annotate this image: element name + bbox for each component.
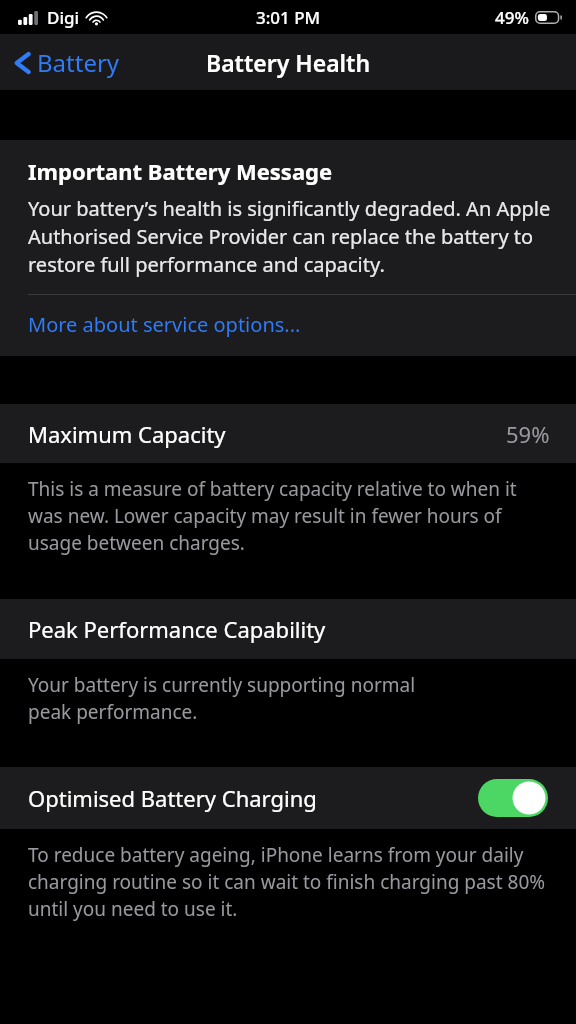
button[interactable]: Maximum Capacity — [0, 404, 576, 463]
staticText: More about service options... — [28, 311, 301, 338]
staticText: 49% — [495, 6, 529, 29]
staticText: 3:01 PM — [256, 6, 321, 29]
staticText: Your battery’s health is significantly d… — [28, 195, 552, 278]
button[interactable]: More about service options... — [0, 295, 576, 356]
staticText: 59% — [506, 419, 550, 449]
button[interactable]: Peak Performance Capability — [0, 599, 576, 659]
staticText: Maximum Capacity — [28, 419, 226, 449]
button[interactable]: Back — [0, 40, 132, 85]
staticText: This is a measure of battery capacity re… — [28, 476, 550, 556]
staticText: Optimised Battery Charging — [28, 783, 317, 813]
staticText: Battery — [37, 46, 120, 79]
button[interactable]: Optimised Battery Charging toggle — [478, 779, 548, 817]
staticText: Peak Performance Capability — [28, 614, 326, 644]
staticText: Important Battery Message — [28, 156, 333, 186]
other: Back — [14, 49, 31, 77]
staticText: Your battery is currently supporting nor… — [28, 672, 456, 725]
staticText: To reduce battery ageing, iPhone learns … — [28, 842, 550, 922]
staticText: Digi — [47, 6, 80, 29]
staticText: Battery Health — [206, 47, 371, 78]
button[interactable]: Optimised Battery Charging — [0, 767, 576, 829]
